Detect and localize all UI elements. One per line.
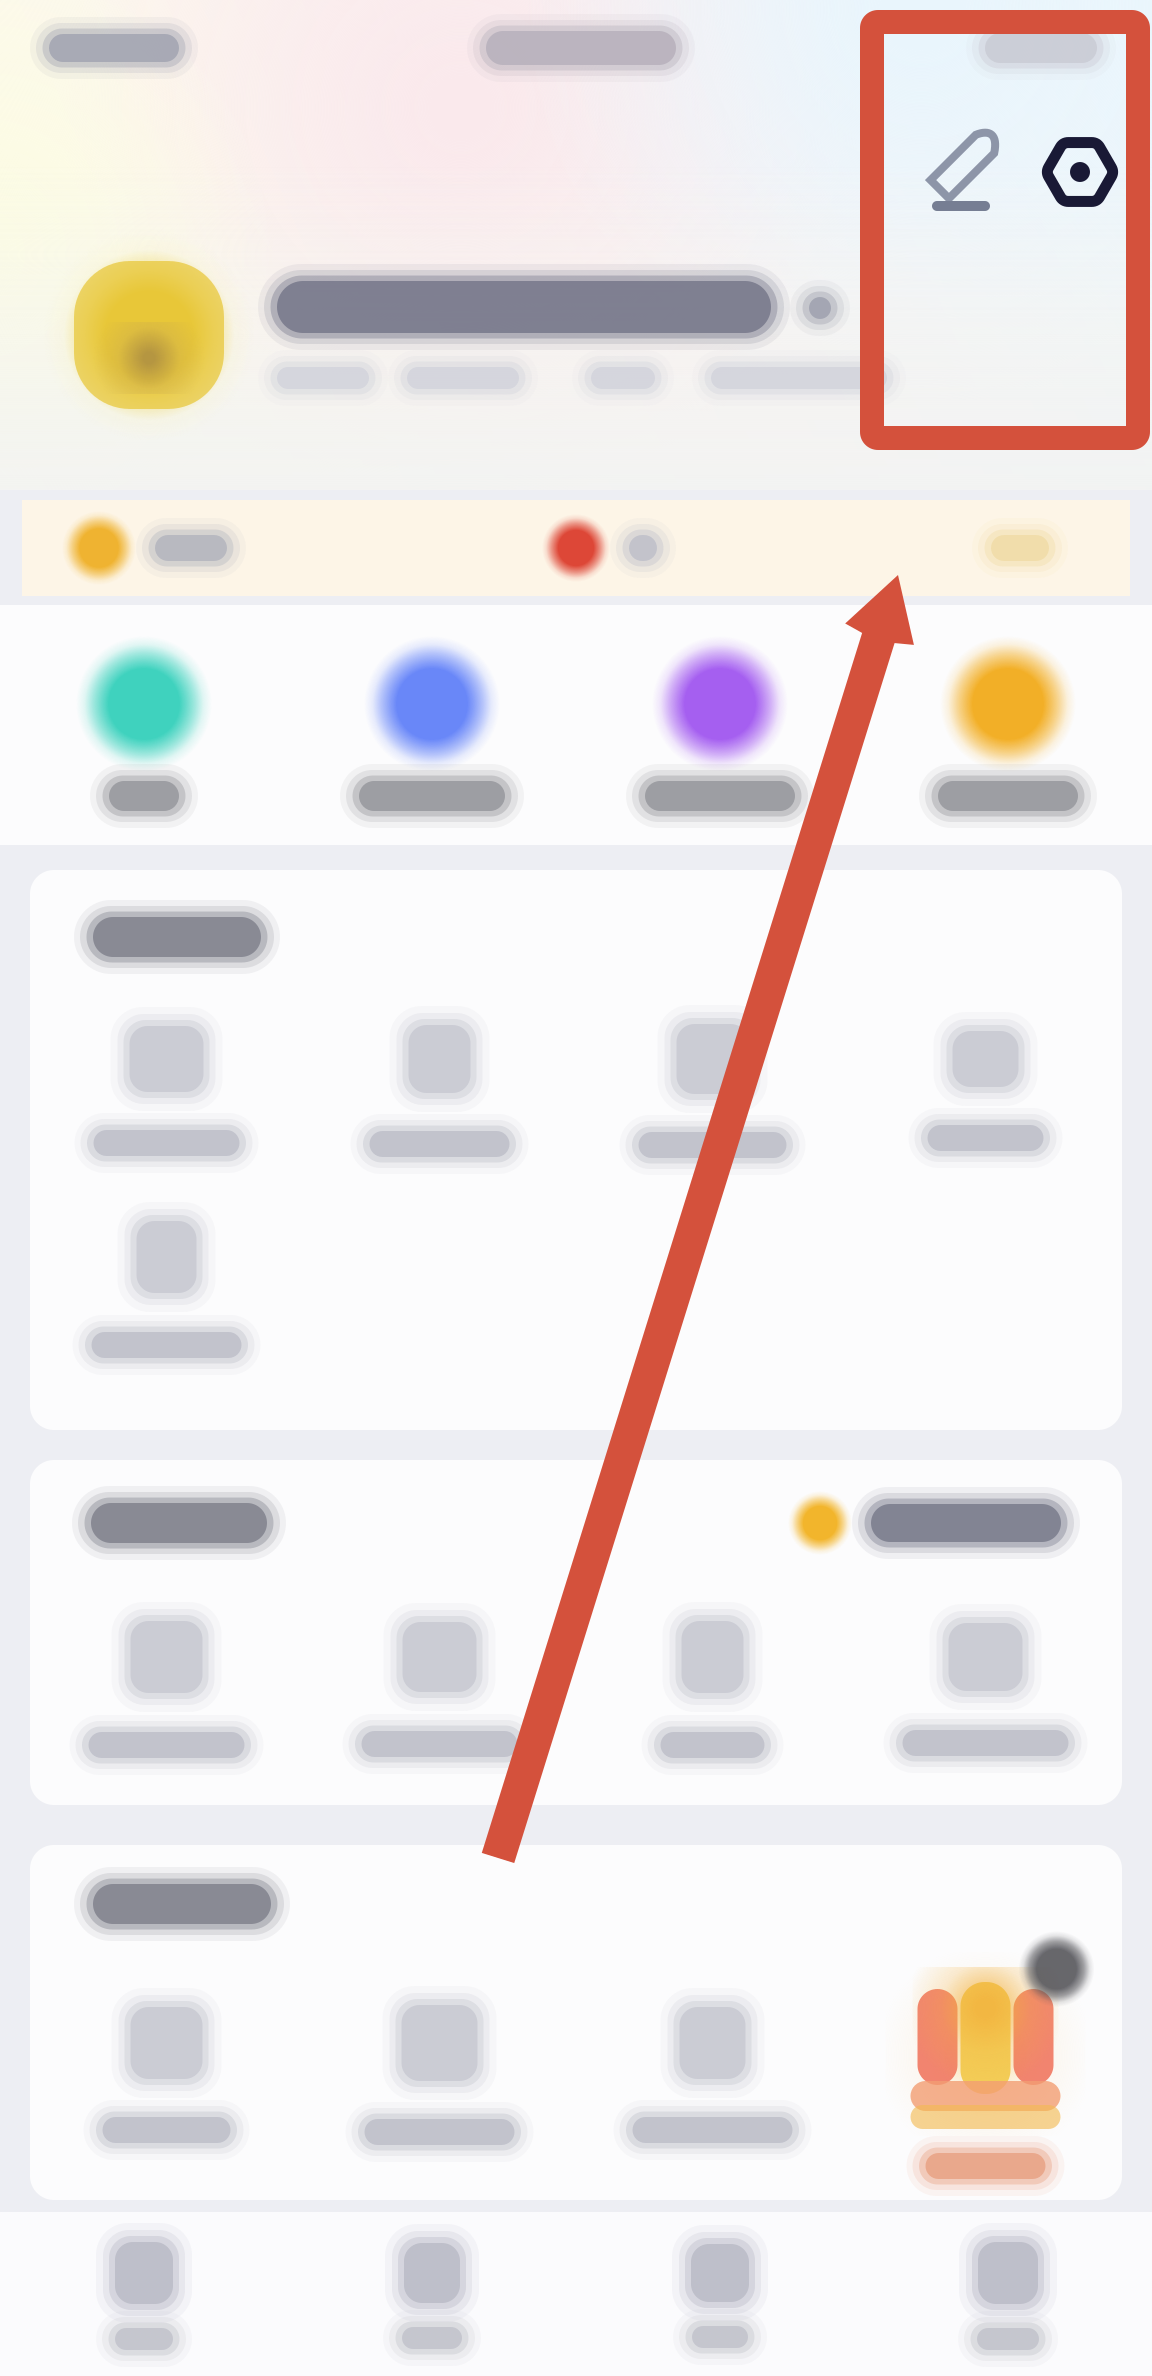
- button[interactable]: Tab: [576, 2225, 864, 2365]
- button[interactable]: Feature: [576, 1005, 849, 1175]
- button[interactable]: Feature: [576, 1988, 849, 2160]
- button[interactable]: Tab: [288, 2224, 576, 2366]
- button[interactable]: Feature: [303, 1986, 576, 2162]
- button[interactable]: Tab: [864, 2223, 1152, 2367]
- button[interactable]: Tab: [0, 2223, 288, 2367]
- button[interactable]: Quick action: [288, 636, 576, 828]
- button[interactable]: Feature: [849, 1012, 1122, 1168]
- button[interactable]: Feature: [30, 1007, 303, 1173]
- button[interactable]: Quick action: [576, 636, 864, 828]
- button[interactable]: Settings: [1024, 116, 1136, 228]
- button[interactable]: Edit profile: [906, 116, 1018, 228]
- button[interactable]: Feature: [30, 1202, 303, 1375]
- button[interactable]: Feature: [576, 1602, 849, 1775]
- button[interactable]: Quick action: [0, 636, 288, 828]
- button[interactable]: Feature: [849, 1604, 1122, 1773]
- button[interactable]: [0, 500, 1152, 596]
- button[interactable]: Feature: [303, 1006, 576, 1174]
- button[interactable]: Feature: [30, 1602, 303, 1775]
- button[interactable]: Member benefits: [849, 1952, 1122, 2196]
- button[interactable]: Feature: [30, 1988, 303, 2160]
- button[interactable]: Feature: [303, 1603, 576, 1774]
- button[interactable]: Quick action: [864, 636, 1152, 828]
